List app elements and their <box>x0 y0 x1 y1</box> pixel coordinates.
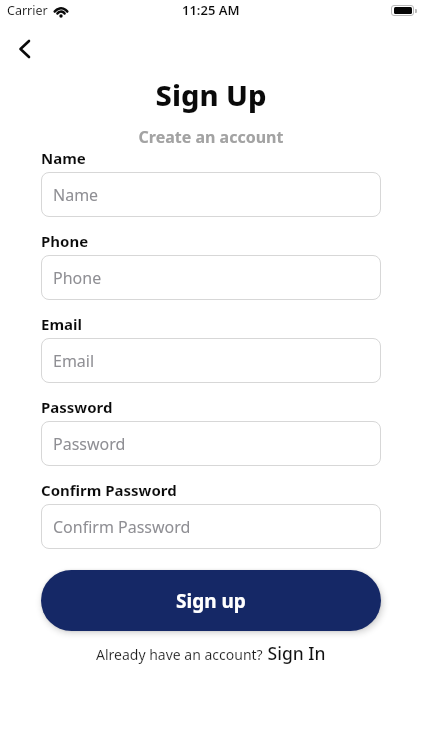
staticText: Phone <box>41 231 89 251</box>
button[interactable]: Email <box>41 338 381 383</box>
staticText: Name <box>53 184 99 206</box>
button[interactable]: Already have an account? <box>0 641 422 665</box>
staticText: Password <box>41 397 113 417</box>
staticText: Confirm Password <box>53 516 191 538</box>
staticText: Email <box>53 350 95 372</box>
staticText: Password <box>53 433 126 455</box>
button[interactable] <box>11 36 37 62</box>
staticText: Email <box>41 314 82 334</box>
staticText: Phone <box>53 267 102 289</box>
staticText: 11:25 AM <box>182 1 240 19</box>
button[interactable]: Name <box>41 172 381 217</box>
button[interactable]: Sign up <box>41 570 381 631</box>
button[interactable]: Password <box>41 421 381 466</box>
staticText: Sign up <box>176 588 246 614</box>
staticText: Confirm Password <box>41 480 177 500</box>
staticText: Already have an account? <box>96 645 263 664</box>
button[interactable]: Phone <box>41 255 381 300</box>
staticText: Sign Up <box>0 75 422 114</box>
button[interactable]: Confirm Password <box>41 504 381 549</box>
staticText: Carrier <box>7 2 48 19</box>
staticText: Name <box>41 148 86 168</box>
staticText: Create an account <box>0 126 422 148</box>
staticText: Sign In <box>263 641 326 665</box>
